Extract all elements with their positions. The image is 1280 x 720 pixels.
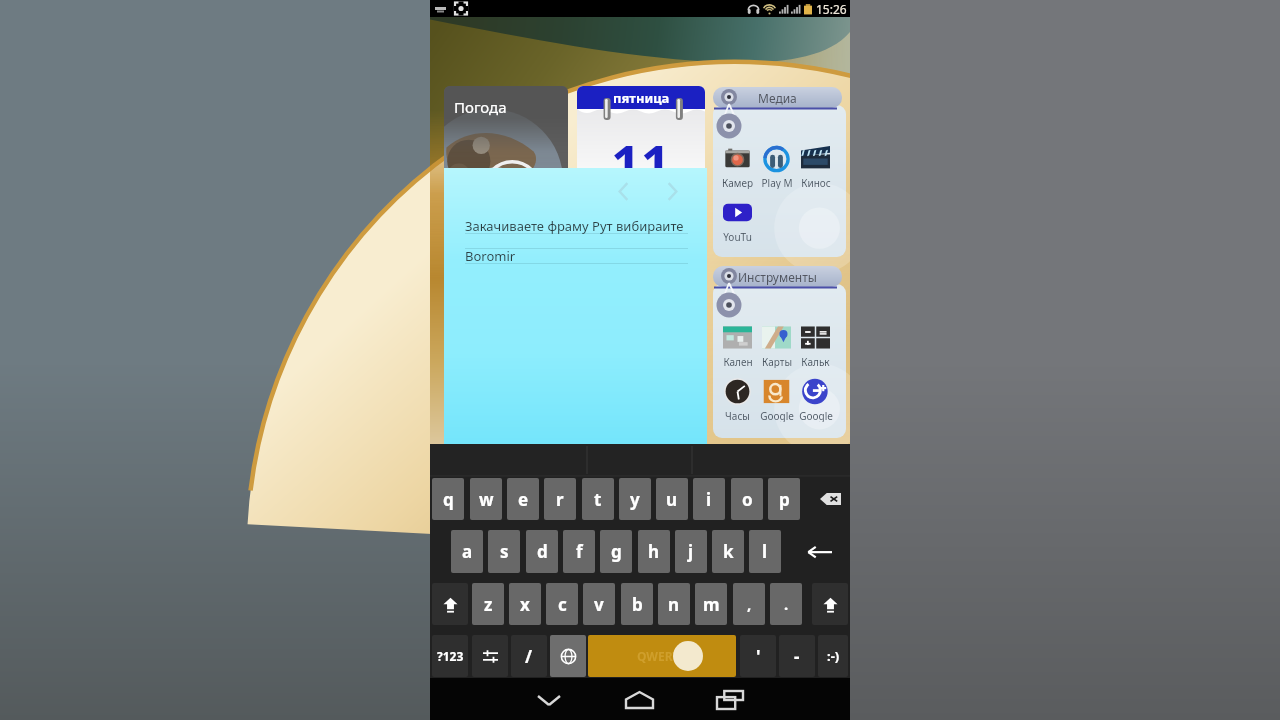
button[interactable] xyxy=(713,105,846,257)
staticText: p xyxy=(779,488,790,511)
staticText: r xyxy=(556,488,564,511)
staticText: QWERTY xyxy=(637,648,688,664)
staticText: , xyxy=(747,594,752,614)
staticText: YouTu xyxy=(723,230,752,243)
button[interactable]: g xyxy=(600,530,632,573)
staticText: Часы xyxy=(725,409,750,422)
staticText: l xyxy=(762,540,768,563)
button[interactable]: d xyxy=(526,530,558,573)
button[interactable]: Google xyxy=(796,377,835,422)
button[interactable] xyxy=(713,284,846,438)
staticText: t xyxy=(594,488,602,511)
staticText: . xyxy=(784,594,789,614)
button[interactable]: / xyxy=(511,635,547,677)
staticText: k xyxy=(723,540,734,563)
button[interactable]: o xyxy=(731,478,763,520)
staticText: g xyxy=(611,540,622,563)
button[interactable]: Shift xyxy=(812,583,848,625)
staticText: - xyxy=(794,645,800,668)
button[interactable]: q xyxy=(432,478,464,520)
button[interactable]: Камер xyxy=(718,144,757,189)
button[interactable]: j xyxy=(675,530,707,573)
staticText: Камер xyxy=(722,176,753,189)
staticText: n xyxy=(668,593,680,616)
staticText: o xyxy=(742,488,753,511)
button[interactable]: Play M xyxy=(757,144,796,189)
button[interactable]: Погода xyxy=(444,86,568,185)
staticText: 11 xyxy=(611,127,671,185)
button[interactable]: n xyxy=(658,583,690,625)
button[interactable]: Home xyxy=(609,685,669,715)
staticText: Кален xyxy=(723,355,753,368)
button[interactable]: Кинос xyxy=(796,144,835,189)
button[interactable]: b xyxy=(621,583,653,625)
button[interactable]: Next xyxy=(655,177,689,206)
button[interactable]: i xyxy=(693,478,725,520)
button[interactable]: Enter xyxy=(790,530,848,573)
button[interactable]: u xyxy=(656,478,688,520)
staticText: e xyxy=(518,488,529,511)
staticText: h xyxy=(648,540,660,563)
staticText: Google xyxy=(799,409,833,422)
staticText: x xyxy=(520,593,530,616)
staticText: пятница xyxy=(613,89,670,107)
button[interactable]: h xyxy=(638,530,670,573)
button[interactable]: y xyxy=(619,478,651,520)
button[interactable]: Shift xyxy=(432,583,468,625)
button[interactable]: YouTu xyxy=(718,198,757,243)
button[interactable]: Hide keyboard xyxy=(519,685,579,715)
button[interactable]: Backspace xyxy=(810,478,850,520)
button[interactable]: a xyxy=(451,530,483,573)
button[interactable]: Карты xyxy=(757,323,796,368)
staticText: v xyxy=(594,593,604,616)
button[interactable]: e xyxy=(507,478,539,520)
button[interactable]: Recent apps xyxy=(700,685,760,715)
button[interactable]: t xyxy=(582,478,614,520)
button[interactable]: . xyxy=(770,583,802,625)
staticText: s xyxy=(500,540,509,563)
button[interactable]: s xyxy=(488,530,520,573)
button[interactable]: l xyxy=(749,530,781,573)
staticText: w xyxy=(479,488,494,511)
button[interactable]: r xyxy=(544,478,576,520)
button[interactable]: Keyboard settings xyxy=(472,635,508,677)
staticText: z xyxy=(484,593,493,616)
button[interactable]: Space xyxy=(588,635,736,677)
staticText: ?123 xyxy=(437,648,464,664)
staticText: c xyxy=(558,593,567,616)
button[interactable]: Часы xyxy=(718,377,757,422)
staticText: / xyxy=(525,645,533,668)
button[interactable]: ?123 xyxy=(432,635,468,677)
button[interactable]: Кальк xyxy=(796,323,835,368)
staticText: b xyxy=(632,593,643,616)
button[interactable]: Previous xyxy=(606,177,640,206)
button[interactable]: :-) xyxy=(818,635,848,677)
staticText: :-) xyxy=(827,647,840,665)
button[interactable]: , xyxy=(733,583,765,625)
button[interactable]: z xyxy=(472,583,504,625)
button[interactable]: m xyxy=(695,583,727,625)
button[interactable]: x xyxy=(509,583,541,625)
button[interactable]: Google xyxy=(757,377,796,422)
staticText: Карты xyxy=(762,355,792,368)
staticText: Инструменты xyxy=(738,269,817,285)
staticText: i xyxy=(706,488,712,511)
button[interactable]: k xyxy=(712,530,744,573)
staticText: d xyxy=(537,540,548,563)
button[interactable]: - xyxy=(779,635,815,677)
button[interactable]: пятница xyxy=(577,86,705,185)
staticText: Google xyxy=(760,409,794,422)
button[interactable]: Change language xyxy=(550,635,586,677)
button[interactable]: f xyxy=(563,530,595,573)
staticText: ' xyxy=(756,645,761,668)
staticText: m xyxy=(703,593,720,616)
button[interactable]: Кален xyxy=(718,323,757,368)
button[interactable]: ' xyxy=(740,635,776,677)
staticText: Play M xyxy=(761,176,793,189)
staticText: u xyxy=(666,488,678,511)
button[interactable]: w xyxy=(470,478,502,520)
button[interactable]: v xyxy=(583,583,615,625)
staticText: j xyxy=(688,540,694,563)
button[interactable]: p xyxy=(768,478,800,520)
button[interactable]: c xyxy=(546,583,578,625)
